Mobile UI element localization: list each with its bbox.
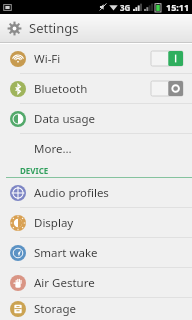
button[interactable]: Bluetooth bbox=[0, 74, 192, 103]
staticText: Audio profiles bbox=[34, 185, 109, 201]
button[interactable]: Toggle off bbox=[151, 81, 183, 96]
staticText: Display bbox=[34, 215, 74, 231]
staticText: Wi-Fi bbox=[34, 51, 61, 67]
staticText: Settings bbox=[29, 19, 79, 37]
staticText: Air Gesture bbox=[34, 275, 95, 291]
staticText: Smart wake bbox=[34, 245, 98, 261]
staticText: 15:11 bbox=[166, 1, 190, 13]
staticText: Bluetooth bbox=[34, 81, 88, 97]
button[interactable]: Smart wake bbox=[0, 238, 192, 267]
button[interactable]: Data usage bbox=[0, 104, 192, 133]
staticText: DEVICE bbox=[20, 165, 49, 176]
staticText: Data usage bbox=[34, 111, 96, 127]
staticText: More… bbox=[34, 141, 72, 157]
button[interactable]: Air Gesture bbox=[0, 268, 192, 297]
button[interactable]: Display bbox=[0, 208, 192, 237]
staticText: Storage bbox=[34, 301, 76, 317]
button[interactable]: Storage bbox=[0, 298, 192, 320]
button[interactable]: More… bbox=[0, 134, 192, 163]
button[interactable]: Toggle on bbox=[151, 51, 183, 66]
button[interactable]: Audio profiles bbox=[0, 178, 192, 207]
staticText: 3G bbox=[120, 2, 131, 13]
button[interactable]: Wi-Fi bbox=[0, 44, 192, 73]
